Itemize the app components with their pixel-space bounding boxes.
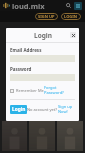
staticText: Login <box>12 106 26 113</box>
staticText: No account yet? <box>27 107 58 112</box>
staticText: Login <box>34 31 52 40</box>
button[interactable]: SIGN UP <box>38 13 55 20</box>
button[interactable]: Close <box>70 32 76 38</box>
staticText: SIGN UP <box>38 14 55 19</box>
button[interactable]: Remember Me <box>10 88 44 93</box>
button[interactable] <box>2 121 27 151</box>
staticText: Sign up Now! <box>58 104 75 114</box>
staticText: LOGIN <box>64 14 78 19</box>
staticText: Forgot Password? <box>44 85 75 95</box>
button[interactable]: Forgot Password? <box>44 85 75 95</box>
button[interactable]: LOGIN <box>64 13 78 20</box>
button[interactable]: Sign up Now! <box>58 104 75 114</box>
button[interactable]: Login <box>10 105 27 114</box>
button[interactable]: Menu <box>74 2 82 10</box>
staticText: Password <box>10 66 32 72</box>
button[interactable]: Search <box>64 1 73 10</box>
button[interactable] <box>57 121 83 151</box>
staticText: loud.mix <box>12 1 45 11</box>
staticText: Remember Me <box>16 88 44 93</box>
button[interactable] <box>29 121 55 151</box>
staticText: Email Address <box>10 47 42 53</box>
